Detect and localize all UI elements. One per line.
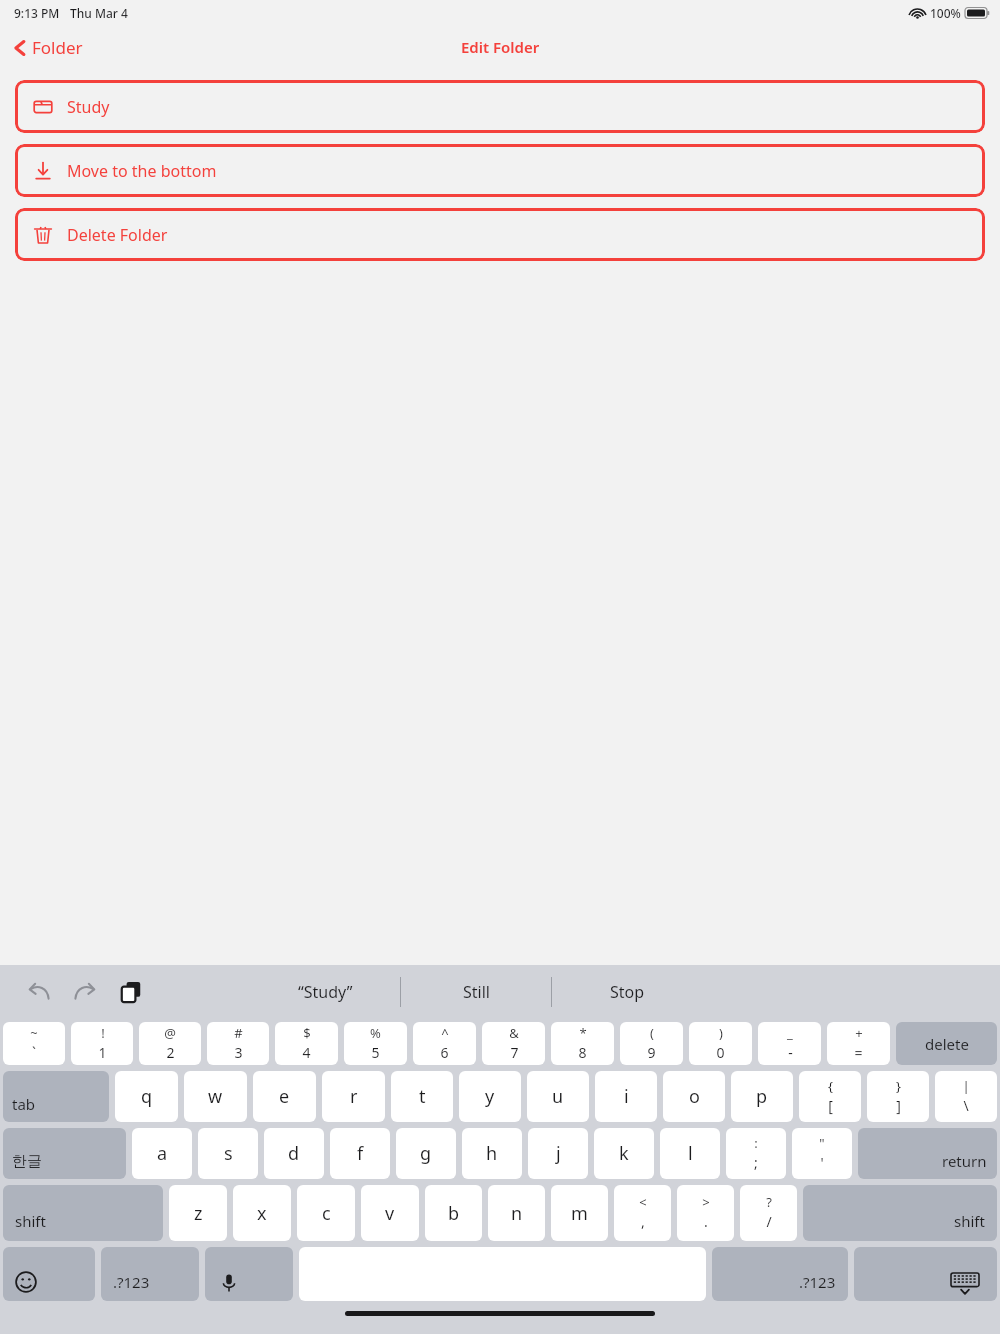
- button[interactable]: Undo: [20, 973, 58, 1011]
- staticText: k: [619, 1141, 629, 1166]
- staticText: %: [370, 1024, 381, 1042]
- button[interactable]: x: [233, 1185, 291, 1241]
- button[interactable]: @: [139, 1022, 201, 1065]
- button[interactable]: Study: [15, 80, 985, 133]
- button[interactable]: t: [391, 1071, 453, 1122]
- staticText: .?123: [799, 1272, 836, 1292]
- staticText: “Study”: [298, 981, 353, 1003]
- staticText: c: [322, 1201, 331, 1226]
- button[interactable]: q: [115, 1071, 178, 1122]
- button[interactable]: delete: [896, 1022, 997, 1065]
- staticText: !: [101, 1024, 105, 1042]
- button[interactable]: #: [207, 1022, 269, 1065]
- button[interactable]: l: [660, 1128, 720, 1179]
- button[interactable]: “Study”: [250, 965, 400, 1019]
- staticText: |: [962, 1077, 970, 1095]
- button[interactable]: i: [595, 1071, 657, 1122]
- button[interactable]: 한글: [3, 1128, 126, 1179]
- button[interactable]: z: [169, 1185, 227, 1241]
- button[interactable]: ~: [3, 1022, 65, 1065]
- button[interactable]: :: [726, 1128, 786, 1179]
- button[interactable]: .?123: [712, 1247, 848, 1301]
- staticText: tab: [12, 1094, 36, 1114]
- staticText: /: [766, 1212, 772, 1231]
- button[interactable]: shift: [3, 1185, 163, 1241]
- button[interactable]: >: [677, 1185, 734, 1241]
- button[interactable]: _: [758, 1022, 821, 1065]
- button[interactable]: Paste: [112, 973, 150, 1011]
- button[interactable]: Edit Folder: [455, 31, 546, 63]
- button[interactable]: ?: [740, 1185, 797, 1241]
- button[interactable]: }: [867, 1071, 929, 1122]
- button[interactable]: Still: [401, 965, 551, 1019]
- button[interactable]: ": [792, 1128, 852, 1179]
- button[interactable]: d: [264, 1128, 324, 1179]
- button[interactable]: j: [528, 1128, 588, 1179]
- button[interactable]: r: [322, 1071, 385, 1122]
- button[interactable]: g: [396, 1128, 456, 1179]
- button[interactable]: |: [935, 1071, 997, 1122]
- button[interactable]: Delete Folder: [15, 208, 985, 261]
- button[interactable]: .?123: [101, 1247, 199, 1301]
- staticText: #: [234, 1024, 243, 1042]
- button[interactable]: $: [275, 1022, 338, 1065]
- button[interactable]: (: [620, 1022, 683, 1065]
- button[interactable]: Move to the bottom: [15, 144, 985, 197]
- staticText: `: [32, 1043, 36, 1062]
- button[interactable]: Redo: [66, 973, 104, 1011]
- button[interactable]: {: [799, 1071, 861, 1122]
- staticText: >: [702, 1193, 710, 1211]
- button[interactable]: Folder: [10, 32, 87, 63]
- staticText: u: [552, 1084, 564, 1109]
- button[interactable]: !: [71, 1022, 133, 1065]
- button[interactable]: Stop: [552, 965, 702, 1019]
- button[interactable]: n: [488, 1185, 545, 1241]
- staticText: @: [164, 1024, 176, 1042]
- button[interactable]: m: [551, 1185, 608, 1241]
- staticText: 한글: [12, 1152, 42, 1171]
- staticText: ^: [441, 1024, 449, 1042]
- staticText: *: [579, 1024, 587, 1042]
- staticText: }: [896, 1077, 901, 1095]
- button[interactable]: e: [253, 1071, 316, 1122]
- button[interactable]: w: [184, 1071, 247, 1122]
- button[interactable]: ): [689, 1022, 752, 1065]
- staticText: t: [419, 1084, 426, 1109]
- staticText: 100%: [930, 5, 961, 21]
- button[interactable]: *: [551, 1022, 614, 1065]
- button[interactable]: b: [425, 1185, 482, 1241]
- button[interactable]: ^: [413, 1022, 476, 1065]
- button[interactable]: y: [459, 1071, 521, 1122]
- button[interactable]: shift: [803, 1185, 997, 1241]
- button[interactable]: tab: [3, 1071, 109, 1122]
- button[interactable]: return: [858, 1128, 997, 1179]
- button[interactable]: f: [330, 1128, 390, 1179]
- button[interactable]: u: [527, 1071, 589, 1122]
- staticText: y: [485, 1084, 495, 1109]
- button[interactable]: Emoji: [3, 1247, 95, 1301]
- staticText: ,: [641, 1212, 645, 1231]
- button[interactable]: Dictation: [205, 1247, 293, 1301]
- button[interactable]: +: [827, 1022, 890, 1065]
- button[interactable]: <: [614, 1185, 671, 1241]
- button[interactable]: k: [594, 1128, 654, 1179]
- button[interactable]: &: [482, 1022, 545, 1065]
- button[interactable]: o: [663, 1071, 725, 1122]
- staticText: 8: [578, 1043, 587, 1062]
- button[interactable]: s: [198, 1128, 258, 1179]
- button[interactable]: h: [462, 1128, 522, 1179]
- staticText: 4: [302, 1043, 311, 1062]
- staticText: m: [571, 1201, 588, 1226]
- button[interactable]: a: [132, 1128, 192, 1179]
- button[interactable]: Hide keyboard: [854, 1247, 997, 1301]
- button[interactable]: %: [344, 1022, 407, 1065]
- button[interactable]: v: [361, 1185, 419, 1241]
- button[interactable]: p: [731, 1071, 793, 1122]
- staticText: i: [624, 1084, 629, 1109]
- staticText: 0: [716, 1043, 725, 1062]
- button[interactable]: c: [297, 1185, 355, 1241]
- staticText: .?123: [113, 1272, 150, 1292]
- staticText: shift: [954, 1211, 985, 1231]
- staticText: (: [650, 1024, 654, 1042]
